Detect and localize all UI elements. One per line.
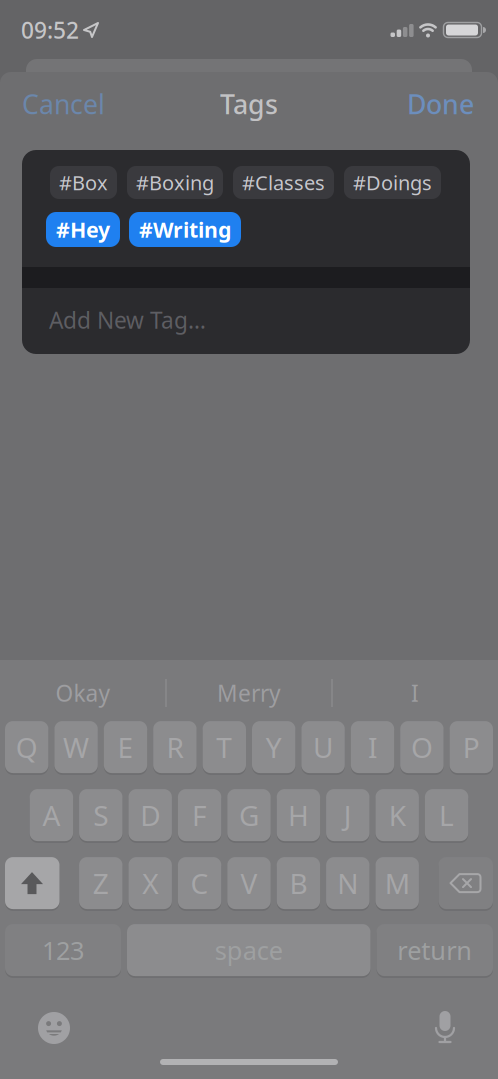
staticText: #Writing: [139, 215, 231, 244]
button[interactable]: #Boxing: [127, 166, 223, 199]
button[interactable]: F: [178, 789, 221, 843]
staticText: S: [93, 796, 108, 834]
staticText: Tags: [220, 86, 278, 122]
staticText: A: [42, 796, 60, 834]
button[interactable]: T: [203, 721, 246, 775]
staticText: I: [411, 678, 419, 708]
staticText: H: [288, 796, 309, 834]
button[interactable]: L: [425, 789, 468, 843]
staticText: #Classes: [242, 169, 325, 196]
button[interactable]: P: [450, 721, 493, 775]
button[interactable]: J: [326, 789, 369, 843]
staticText: return: [397, 933, 472, 967]
button[interactable]: A: [30, 789, 73, 843]
staticText: space: [215, 933, 283, 967]
button[interactable]: M: [375, 857, 419, 911]
button[interactable]: Okay: [55, 678, 110, 708]
staticText: #Box: [59, 169, 108, 196]
staticText: 123: [42, 933, 84, 967]
button[interactable]: V: [227, 857, 271, 911]
button[interactable]: Y: [252, 721, 295, 775]
button[interactable]: N: [326, 857, 369, 911]
button[interactable]: C: [178, 857, 221, 911]
staticText: V: [240, 864, 257, 902]
staticText: B: [289, 864, 307, 902]
staticText: Q: [16, 728, 38, 766]
button[interactable]: [5, 857, 59, 911]
button[interactable]: space: [127, 924, 370, 978]
staticText: Z: [93, 864, 109, 902]
staticText: W: [63, 728, 89, 766]
staticText: U: [313, 728, 333, 766]
staticText: L: [439, 796, 454, 834]
staticText: F: [192, 796, 207, 834]
button[interactable]: H: [277, 789, 320, 843]
staticText: #Doings: [353, 169, 432, 196]
staticText: P: [463, 728, 480, 766]
button[interactable]: O: [400, 721, 444, 775]
button[interactable]: #Writing: [129, 212, 241, 247]
button[interactable]: Add New Tag…: [49, 305, 349, 335]
staticText: 09:52: [21, 15, 79, 45]
button[interactable]: Q: [5, 721, 48, 775]
button[interactable]: #Hey: [46, 212, 120, 247]
button[interactable]: I: [351, 721, 394, 775]
staticText: G: [239, 796, 259, 834]
button[interactable]: S: [79, 789, 122, 843]
button[interactable]: X: [128, 857, 172, 911]
staticText: Okay: [55, 678, 110, 708]
button[interactable]: Done: [354, 87, 474, 121]
button[interactable]: 123: [5, 924, 121, 978]
button[interactable]: [438, 857, 493, 911]
staticText: D: [140, 796, 160, 834]
button[interactable]: Merry: [217, 678, 281, 708]
staticText: Add New Tag…: [49, 305, 206, 335]
staticText: T: [216, 728, 232, 766]
button[interactable]: K: [375, 789, 419, 843]
staticText: J: [344, 796, 352, 834]
button[interactable]: I: [411, 678, 419, 708]
staticText: Cancel: [22, 86, 105, 122]
button[interactable]: Cancel: [22, 87, 142, 121]
button[interactable]: G: [227, 789, 271, 843]
button[interactable]: [38, 1012, 70, 1044]
button[interactable]: [435, 1011, 455, 1045]
button[interactable]: D: [128, 789, 172, 843]
staticText: Done: [407, 86, 474, 122]
staticText: X: [142, 864, 158, 902]
button[interactable]: Z: [79, 857, 122, 911]
staticText: R: [166, 728, 183, 766]
staticText: C: [191, 864, 209, 902]
staticText: Merry: [217, 678, 281, 708]
button[interactable]: B: [277, 857, 320, 911]
button[interactable]: R: [153, 721, 197, 775]
staticText: #Boxing: [136, 169, 214, 196]
staticText: #Hey: [56, 215, 110, 244]
staticText: K: [389, 796, 406, 834]
staticText: O: [411, 728, 433, 766]
button[interactable]: U: [301, 721, 345, 775]
staticText: M: [385, 864, 410, 902]
staticText: E: [117, 728, 133, 766]
button[interactable]: #Box: [50, 166, 117, 199]
button[interactable]: return: [376, 924, 493, 978]
button[interactable]: #Classes: [233, 166, 334, 199]
button[interactable]: E: [104, 721, 147, 775]
button[interactable]: W: [54, 721, 98, 775]
staticText: N: [337, 864, 358, 902]
staticText: I: [368, 728, 377, 766]
staticText: Y: [266, 728, 282, 766]
button[interactable]: #Doings: [344, 166, 441, 199]
